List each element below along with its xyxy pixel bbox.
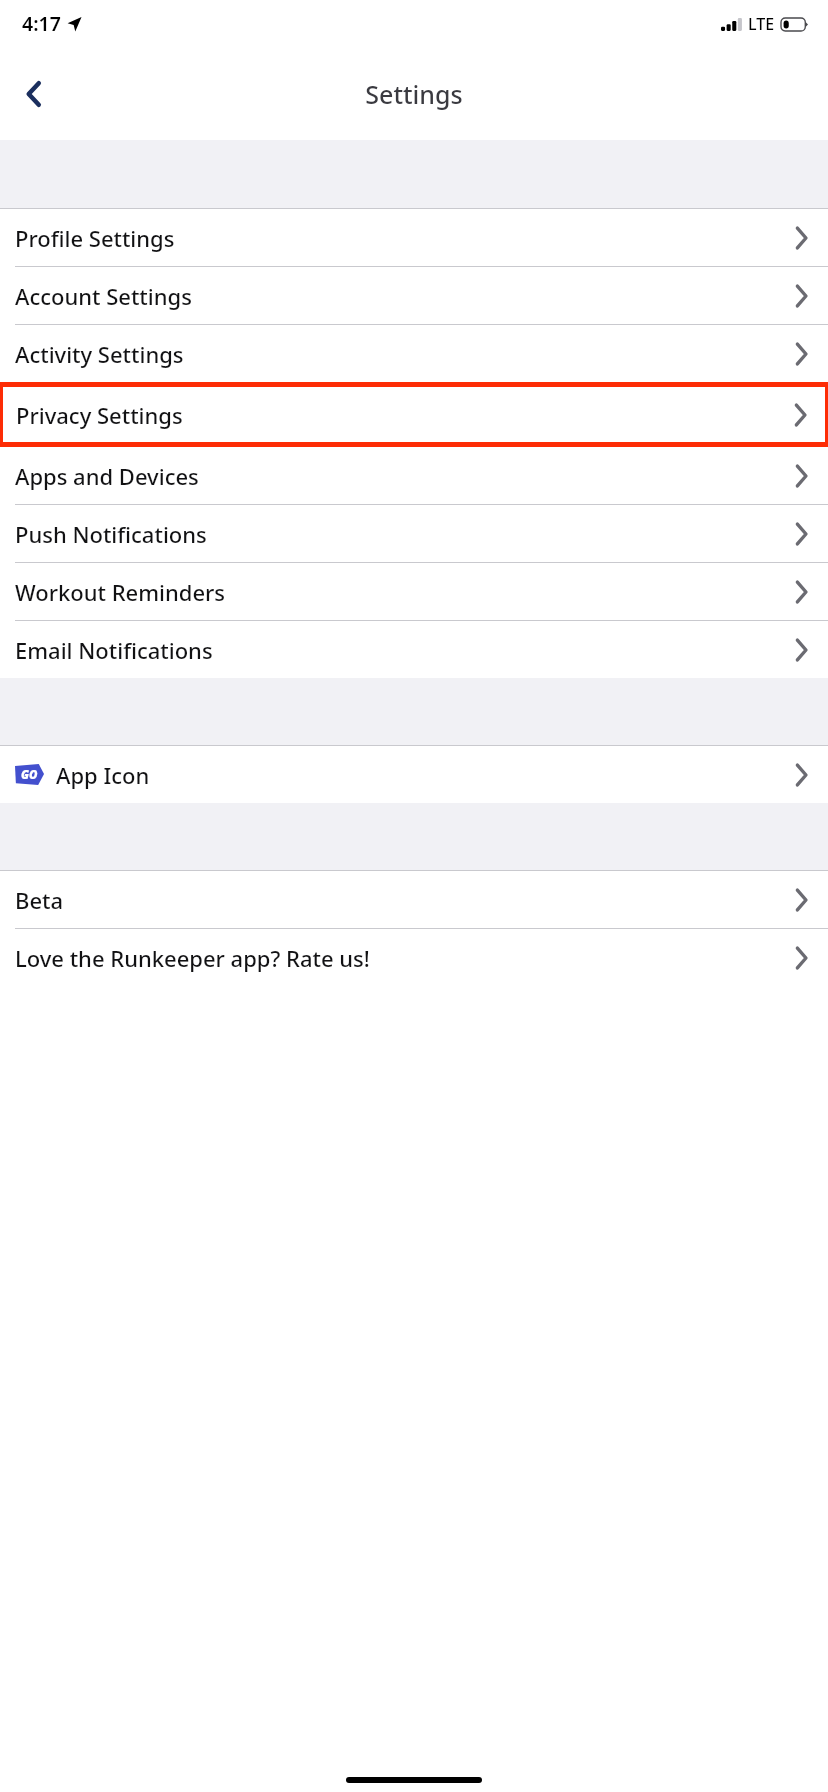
staticText: Love the Runkeeper app? Rate us! xyxy=(15,943,795,973)
button[interactable]: Activity Settings xyxy=(0,325,828,382)
staticText: Apps and Devices xyxy=(15,461,795,491)
staticText: GO xyxy=(21,767,38,783)
button[interactable]: Workout Reminders xyxy=(0,563,828,620)
staticText: Email Notifications xyxy=(15,635,795,665)
staticText: App Icon xyxy=(56,760,795,790)
button[interactable]: GO xyxy=(0,746,828,803)
button[interactable]: Push Notifications xyxy=(0,505,828,562)
staticText: Activity Settings xyxy=(15,339,795,369)
staticText: Settings xyxy=(365,77,463,111)
staticText: Workout Reminders xyxy=(15,577,795,607)
button[interactable]: Beta xyxy=(0,871,828,928)
staticText: 4:17 xyxy=(22,10,61,37)
staticText: Privacy Settings xyxy=(16,400,794,430)
button[interactable]: Account Settings xyxy=(0,267,828,324)
button[interactable]: Apps and Devices xyxy=(0,447,828,504)
button[interactable]: Profile Settings xyxy=(0,209,828,266)
staticText: Account Settings xyxy=(15,281,795,311)
staticText: LTE xyxy=(748,13,775,35)
staticText: Beta xyxy=(15,885,795,915)
staticText: Profile Settings xyxy=(15,223,795,253)
button[interactable]: Privacy Settings xyxy=(0,382,828,447)
button[interactable]: Back xyxy=(0,61,66,127)
button[interactable]: Email Notifications xyxy=(0,621,828,678)
button[interactable]: Love the Runkeeper app? Rate us! xyxy=(0,929,828,986)
staticText: Push Notifications xyxy=(15,519,795,549)
